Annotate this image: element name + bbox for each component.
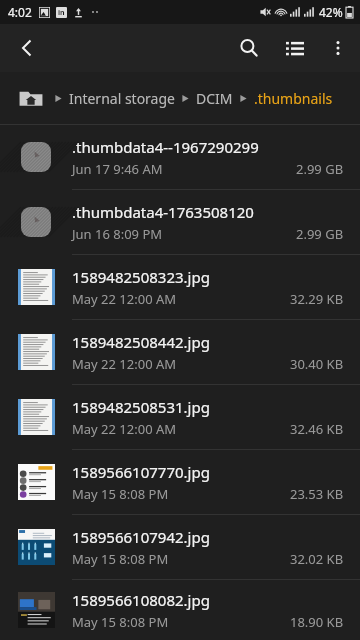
button[interactable]: Home folder bbox=[16, 83, 46, 113]
button[interactable]: 1589482508531.jpg bbox=[0, 385, 360, 449]
staticText: May 22 12:00 AM bbox=[72, 420, 177, 438]
button[interactable]: 1589566108082.jpg bbox=[0, 580, 360, 640]
staticText: 2.99 GB bbox=[296, 225, 344, 243]
staticText: 4:02 bbox=[8, 4, 32, 20]
staticText: .thumbdata4--1967290299 bbox=[72, 137, 259, 157]
staticText: Internal storage bbox=[69, 89, 175, 108]
staticText: May 15 8:08 PM bbox=[72, 550, 169, 568]
button[interactable]: Back bbox=[4, 25, 50, 71]
staticText: in bbox=[58, 8, 65, 18]
staticText: May 15 8:08 PM bbox=[72, 613, 169, 631]
button[interactable]: Internal storage bbox=[69, 89, 175, 108]
button[interactable]: .thumbnails bbox=[254, 89, 333, 108]
staticText: .thumbdata4-1763508120 bbox=[72, 202, 254, 222]
button[interactable]: View mode bbox=[272, 25, 318, 71]
button[interactable]: More options bbox=[318, 28, 358, 68]
staticText: 1589482508442.jpg bbox=[72, 332, 210, 352]
staticText: 2.99 GB bbox=[296, 160, 344, 178]
staticText: 1589566107770.jpg bbox=[72, 462, 210, 482]
staticText: Jun 16 8:09 PM bbox=[72, 225, 163, 243]
staticText: 32.29 KB bbox=[290, 290, 344, 308]
staticText: 42% bbox=[319, 4, 343, 20]
staticText: Jun 17 9:46 AM bbox=[72, 160, 163, 178]
staticText: May 22 12:00 AM bbox=[72, 355, 177, 373]
staticText: 30.40 KB bbox=[290, 355, 344, 373]
staticText: May 15 8:08 PM bbox=[72, 485, 169, 503]
button[interactable]: 1589482508442.jpg bbox=[0, 320, 360, 384]
staticText: DCIM bbox=[196, 89, 233, 108]
staticText: 23.53 KB bbox=[290, 485, 344, 503]
staticText: 1589566107942.jpg bbox=[72, 527, 210, 547]
button[interactable]: .thumbdata4--1967290299 bbox=[0, 125, 360, 189]
staticText: 18.90 KB bbox=[290, 613, 344, 631]
button[interactable]: .thumbdata4-1763508120 bbox=[0, 190, 360, 254]
button[interactable]: Search bbox=[226, 25, 272, 71]
button[interactable]: 1589482508323.jpg bbox=[0, 255, 360, 319]
staticText: 1589482508323.jpg bbox=[72, 267, 210, 287]
button[interactable]: 1589566107942.jpg bbox=[0, 515, 360, 579]
staticText: 32.02 KB bbox=[290, 550, 344, 568]
staticText: 32.46 KB bbox=[290, 420, 344, 438]
staticText: 1589482508531.jpg bbox=[72, 397, 210, 417]
staticText: .thumbnails bbox=[254, 89, 333, 108]
button[interactable]: DCIM bbox=[196, 89, 233, 108]
staticText: 1589566108082.jpg bbox=[72, 590, 210, 610]
button[interactable]: 1589566107770.jpg bbox=[0, 450, 360, 514]
staticText: May 22 12:00 AM bbox=[72, 290, 177, 308]
